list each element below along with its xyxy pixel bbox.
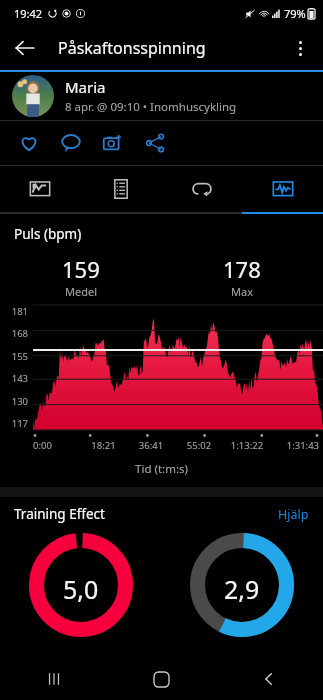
button[interactable]: Details bbox=[80, 166, 161, 212]
staticText: Hjälp bbox=[278, 506, 309, 523]
staticText: 36:41 bbox=[127, 439, 175, 452]
staticText: 5,0 bbox=[63, 572, 99, 606]
staticText: 18:21 bbox=[80, 439, 127, 452]
button[interactable]: Share bbox=[140, 128, 170, 158]
button[interactable]: Heart rate chart bbox=[242, 166, 323, 212]
staticText: 155 bbox=[0, 350, 28, 363]
staticText: 159 bbox=[62, 254, 100, 284]
button[interactable]: 2,9 bbox=[188, 531, 296, 639]
button[interactable]: Back bbox=[215, 658, 323, 700]
staticText: Max bbox=[231, 284, 253, 299]
button[interactable]: Map bbox=[0, 166, 80, 212]
button[interactable]: Add photo bbox=[98, 128, 128, 158]
staticText: 143 bbox=[0, 372, 28, 385]
staticText: 79% bbox=[284, 6, 306, 21]
staticText: Training Effect bbox=[14, 505, 105, 523]
button[interactable]: Like bbox=[14, 128, 44, 158]
staticText: 178 bbox=[223, 254, 261, 284]
button[interactable]: 5,0 bbox=[27, 531, 135, 639]
button[interactable]: Maria bbox=[0, 72, 323, 120]
staticText: 55:02 bbox=[175, 439, 223, 452]
staticText: 168 bbox=[0, 327, 28, 340]
button[interactable]: Home bbox=[107, 658, 215, 700]
staticText: Påskaftonsspinning bbox=[58, 37, 206, 59]
staticText: 117 bbox=[0, 417, 28, 430]
staticText: 0:00 bbox=[33, 439, 80, 452]
staticText: 1:31:43 bbox=[271, 439, 319, 452]
staticText: Medel bbox=[65, 284, 97, 299]
staticText: 1:13:22 bbox=[223, 439, 271, 452]
button[interactable]: Laps bbox=[161, 166, 242, 212]
staticText: 19:42 bbox=[14, 6, 43, 21]
staticText: Puls (bpm) bbox=[14, 225, 82, 243]
staticText: 8 apr. @ 09:10 • Inomhuscykling bbox=[65, 99, 237, 115]
button[interactable]: Comment bbox=[56, 128, 86, 158]
button[interactable]: Hjälp bbox=[278, 506, 309, 523]
staticText: 2,9 bbox=[224, 572, 260, 606]
button[interactable]: Recents bbox=[0, 658, 107, 700]
staticText: Maria bbox=[65, 77, 106, 97]
button[interactable]: Back bbox=[6, 29, 44, 67]
staticText: 130 bbox=[0, 395, 28, 408]
staticText: 181 bbox=[0, 305, 28, 318]
button[interactable]: More options bbox=[281, 29, 319, 67]
staticText: Tid (t:m:s) bbox=[0, 461, 323, 477]
